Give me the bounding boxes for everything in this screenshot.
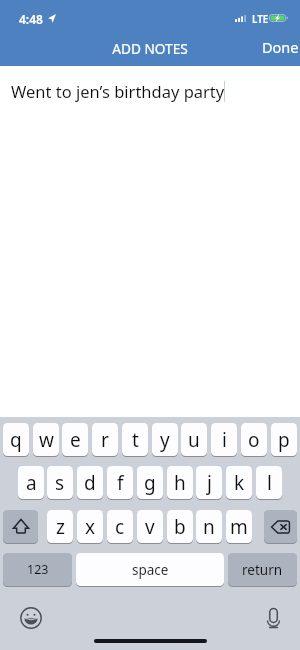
staticText: o — [248, 427, 260, 453]
button[interactable]: k — [226, 466, 252, 500]
button[interactable]: b — [167, 510, 193, 544]
other: Shift — [13, 519, 29, 534]
staticText: m — [230, 514, 248, 540]
staticText: space — [132, 561, 169, 579]
staticText: l — [267, 470, 272, 496]
button[interactable]: Shift — [3, 510, 38, 544]
button[interactable]: return — [228, 553, 297, 587]
button[interactable]: m — [226, 510, 252, 544]
staticText: z — [56, 514, 65, 540]
staticText: i — [222, 427, 227, 453]
staticText: u — [188, 427, 200, 453]
button[interactable]: e — [62, 423, 88, 457]
button[interactable]: Done — [258, 36, 298, 58]
button[interactable]: v — [137, 510, 163, 544]
button[interactable]: z — [47, 510, 73, 544]
staticText: ADD NOTES — [0, 39, 300, 58]
staticText: b — [174, 514, 186, 540]
staticText: 123 — [27, 561, 49, 578]
staticText: d — [84, 470, 96, 496]
staticText: 4:48 — [19, 11, 43, 27]
staticText: f — [117, 470, 124, 496]
staticText: Done — [262, 37, 299, 57]
staticText: k — [234, 470, 245, 496]
staticText: n — [203, 514, 215, 540]
button[interactable]: f — [107, 466, 133, 500]
button[interactable]: u — [181, 423, 207, 457]
button[interactable]: p — [271, 423, 297, 457]
button[interactable]: space — [76, 553, 224, 587]
button[interactable]: j — [196, 466, 222, 500]
button[interactable]: Went to jen’s birthday party — [0, 66, 300, 106]
button[interactable]: o — [241, 423, 267, 457]
staticText: s — [55, 470, 65, 496]
button[interactable]: i — [211, 423, 237, 457]
button[interactable]: g — [137, 466, 163, 500]
button[interactable]: Emoji keyboard — [20, 607, 42, 629]
button[interactable]: h — [167, 466, 193, 500]
button[interactable]: a — [18, 466, 44, 500]
staticText: return — [242, 561, 283, 579]
staticText: e — [70, 427, 81, 453]
staticText: a — [26, 470, 37, 496]
button[interactable]: r — [92, 423, 118, 457]
staticText: g — [144, 470, 156, 496]
button[interactable]: y — [152, 423, 178, 457]
button[interactable]: x — [77, 510, 103, 544]
staticText: v — [145, 514, 155, 540]
button[interactable]: w — [33, 423, 59, 457]
button[interactable]: t — [122, 423, 148, 457]
button[interactable]: l — [256, 466, 282, 500]
button[interactable]: s — [47, 466, 73, 500]
other: Backspace — [271, 520, 290, 534]
button[interactable]: c — [107, 510, 133, 544]
staticText: r — [101, 427, 109, 453]
button[interactable]: Backspace — [264, 510, 297, 544]
staticText: x — [85, 514, 96, 540]
staticText: p — [278, 427, 290, 453]
button[interactable]: q — [3, 423, 29, 457]
staticText: j — [207, 470, 212, 496]
staticText: y — [160, 427, 170, 453]
staticText: w — [39, 427, 54, 453]
staticText: q — [10, 427, 22, 453]
button[interactable]: d — [77, 466, 103, 500]
staticText: Went to jen’s birthday party — [11, 80, 225, 102]
staticText: h — [174, 470, 186, 496]
staticText: t — [132, 427, 139, 453]
staticText: c — [115, 514, 125, 540]
button[interactable]: 123 — [3, 553, 72, 587]
staticText: LTE — [252, 13, 269, 26]
button[interactable]: n — [196, 510, 222, 544]
button[interactable]: Dictation — [267, 608, 280, 628]
